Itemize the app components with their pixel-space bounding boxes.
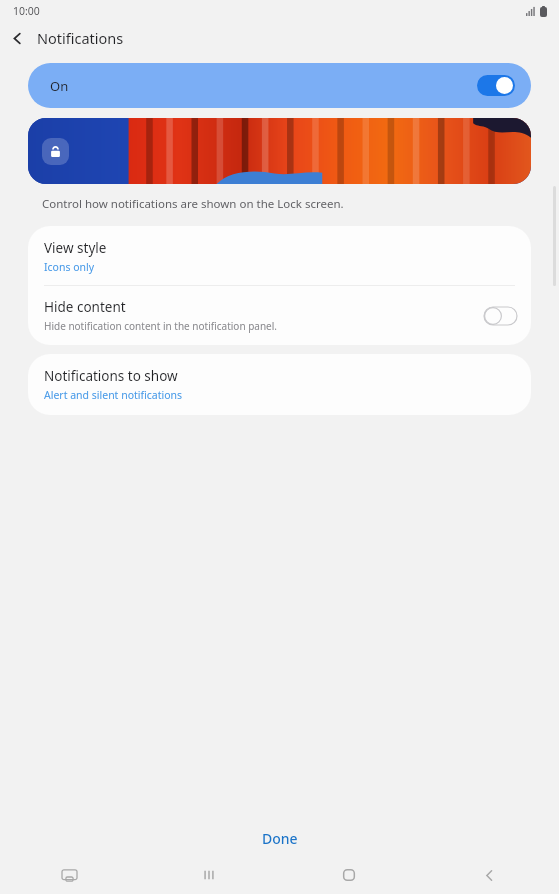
button[interactable]: Notifications on toggle [477,75,515,96]
button[interactable]: On [28,63,531,108]
staticText: 10:00 [13,4,40,18]
staticText: View style [44,239,107,257]
button[interactable]: Hide content toggle [484,307,517,325]
staticText: Hide content [44,298,126,316]
staticText: Icons only [44,260,95,274]
button[interactable]: Hide content [28,286,531,345]
button[interactable]: Back [0,22,34,54]
button[interactable]: Screenshot [0,856,139,894]
button[interactable]: Lock screen preview [28,118,531,184]
staticText: Alert and silent notifications [44,388,183,402]
staticText: On [50,77,69,95]
button[interactable]: Home [279,856,419,894]
button[interactable]: Done [242,823,318,854]
staticText: Notifications to show [44,367,178,385]
staticText: Hide notification content in the notific… [44,319,278,333]
button[interactable]: Back [419,856,559,894]
button[interactable]: Recent apps [139,856,279,894]
staticText: Done [262,829,298,848]
button[interactable]: Notifications to show [28,354,531,415]
staticText: Control how notifications are shown on t… [42,196,344,212]
button[interactable]: View style [28,226,531,285]
staticText: Notifications [37,28,124,48]
